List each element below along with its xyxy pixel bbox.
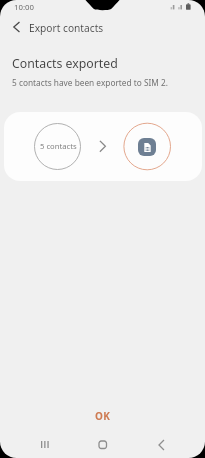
button[interactable]: Home [85, 427, 120, 458]
staticText: 5 contacts have been exported to SIM 2. [12, 77, 168, 88]
button[interactable]: Navigate up [3, 13, 31, 41]
staticText: 5 contacts [40, 141, 77, 151]
staticText: 10:00 [14, 2, 34, 13]
button[interactable]: Back [144, 427, 179, 458]
button[interactable]: OK [75, 403, 130, 429]
staticText: Contacts exported [12, 55, 118, 72]
button[interactable]: Recent apps [27, 427, 62, 458]
staticText: OK [95, 409, 111, 423]
staticText: Export contacts [29, 21, 104, 35]
